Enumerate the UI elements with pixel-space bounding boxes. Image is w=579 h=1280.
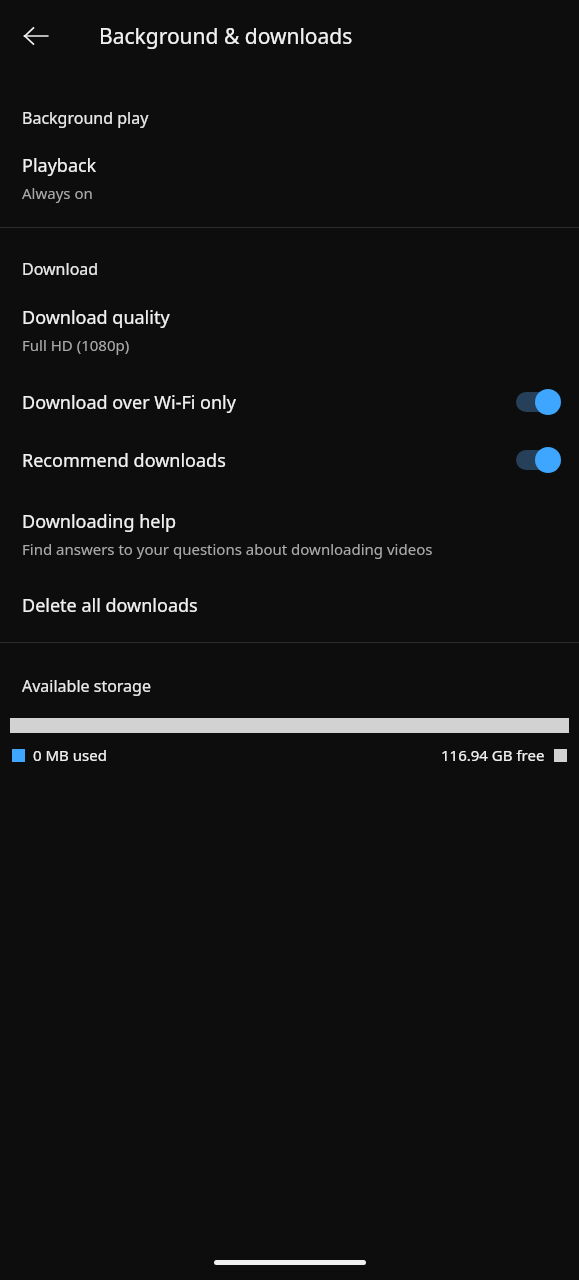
staticText: 0 MB used <box>33 745 107 765</box>
button[interactable]: Delete all downloads <box>0 579 579 642</box>
staticText: Find answers to your questions about dow… <box>22 539 433 559</box>
staticText: Download quality <box>22 305 170 330</box>
button[interactable]: Recommend downloads <box>0 431 579 489</box>
staticText: Download <box>22 258 99 280</box>
staticText: Playback <box>22 153 97 178</box>
button[interactable]: Download quality <box>0 280 579 373</box>
staticText: Available storage <box>22 675 151 697</box>
staticText: Full HD (1080p) <box>22 335 130 355</box>
staticText: Delete all downloads <box>22 593 198 618</box>
staticText: Recommend downloads <box>22 448 514 473</box>
button[interactable]: Download over Wi-Fi only <box>0 373 579 431</box>
staticText: 116.94 GB free <box>441 745 545 765</box>
staticText: Background & downloads <box>99 22 353 51</box>
staticText: Downloading help <box>22 509 177 534</box>
button[interactable]: Back <box>12 12 60 60</box>
button[interactable]: Playback <box>0 129 579 227</box>
staticText: Download over Wi-Fi only <box>22 390 514 415</box>
button[interactable]: Downloading help <box>0 489 579 579</box>
staticText: Background play <box>22 107 149 129</box>
staticText: Always on <box>22 183 93 203</box>
